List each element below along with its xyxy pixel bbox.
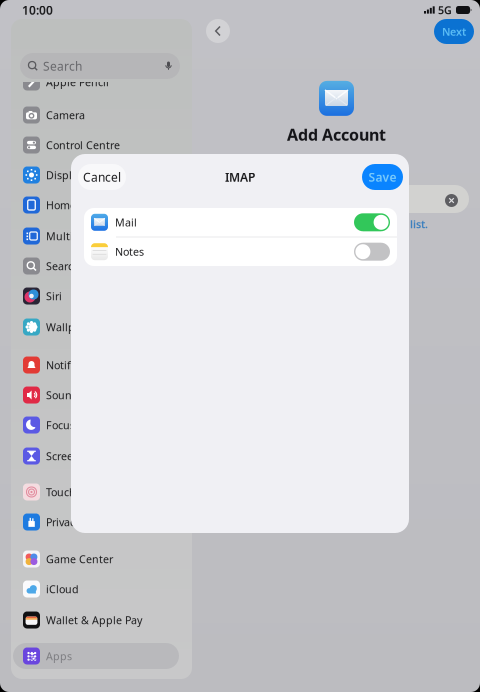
button[interactable]: Search bbox=[20, 53, 180, 79]
staticText: Add Account bbox=[287, 124, 386, 145]
button[interactable]: Control Centre bbox=[13, 132, 179, 158]
staticText: Mail bbox=[115, 215, 137, 229]
button[interactable]: Camera bbox=[13, 102, 179, 128]
staticText: Home Screen & App Library bbox=[46, 198, 173, 212]
staticText: Notifications bbox=[46, 358, 109, 372]
staticText: Privacy & Security bbox=[46, 515, 134, 529]
button[interactable]: Notifications bbox=[13, 352, 179, 378]
staticText: Camera bbox=[46, 108, 85, 122]
button[interactable]: Back bbox=[206, 19, 230, 43]
button[interactable]: iCloud bbox=[13, 576, 179, 602]
staticText: Apps bbox=[46, 649, 72, 663]
staticText: Next bbox=[442, 24, 466, 39]
button[interactable]: Notes bbox=[84, 237, 397, 266]
button[interactable]: Cancel bbox=[78, 164, 126, 190]
button[interactable]: Display & Brightness bbox=[13, 162, 179, 188]
staticText: Game Center bbox=[46, 552, 113, 566]
button[interactable]: Game Center bbox=[13, 546, 179, 572]
button[interactable]: Apps bbox=[13, 643, 179, 669]
staticText: Search bbox=[43, 58, 82, 74]
staticText: Display & Brightness bbox=[46, 168, 152, 182]
button[interactable]: Privacy & Security bbox=[13, 509, 179, 535]
staticText: Siri bbox=[46, 289, 62, 303]
staticText: Search bbox=[46, 259, 80, 273]
staticText: 5G bbox=[438, 3, 452, 17]
button[interactable]: Focus bbox=[13, 412, 179, 438]
staticText: list. bbox=[410, 217, 428, 231]
staticText: Multitasking & Gestures bbox=[46, 229, 170, 243]
button[interactable]: Next bbox=[434, 19, 474, 44]
staticText: 10:00 bbox=[22, 2, 53, 18]
button[interactable]: Home Screen & App Library bbox=[13, 192, 179, 218]
button[interactable]: Screen Time bbox=[13, 443, 179, 469]
staticText: IMAP bbox=[225, 169, 255, 185]
staticText: Focus bbox=[46, 418, 75, 432]
staticText: Notes bbox=[115, 245, 144, 259]
staticText: Control Centre bbox=[46, 138, 120, 152]
staticText: Cancel bbox=[83, 169, 121, 185]
button[interactable]: Wallet & Apple Pay bbox=[13, 607, 179, 633]
button[interactable]: Multitasking & Gestures bbox=[13, 223, 179, 249]
staticText: iCloud bbox=[46, 582, 79, 596]
button[interactable]: Search bbox=[13, 253, 179, 279]
staticText: Wallpaper bbox=[46, 320, 98, 334]
staticText: Screen Time bbox=[46, 449, 108, 463]
staticText: Touch ID & Passcode bbox=[46, 485, 151, 499]
button[interactable]: Mail bbox=[84, 208, 397, 237]
button[interactable]: Wallpaper bbox=[13, 314, 179, 340]
button[interactable]: Apple Pencil bbox=[13, 69, 179, 95]
staticText: Save bbox=[368, 169, 396, 185]
button[interactable]: Save bbox=[362, 164, 403, 190]
button[interactable]: Siri bbox=[13, 283, 179, 309]
staticText: Wallet & Apple Pay bbox=[46, 613, 142, 627]
button[interactable]: Touch ID & Passcode bbox=[13, 479, 179, 505]
staticText: Sounds bbox=[46, 388, 84, 402]
staticText: Apple Pencil bbox=[46, 75, 109, 89]
button[interactable]: Sounds bbox=[13, 382, 179, 408]
